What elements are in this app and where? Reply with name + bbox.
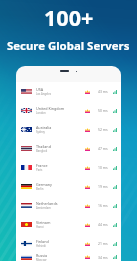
staticText: Paris: [36, 168, 43, 172]
staticText: Vietnam: [36, 220, 51, 225]
staticText: 100+: [44, 3, 94, 32]
staticText: Netherlands: [36, 201, 58, 206]
staticText: 52 ms: [98, 127, 108, 132]
staticText: 43 ms: [98, 89, 108, 94]
button[interactable]: United Kingdom: [16, 101, 121, 120]
button[interactable]: Finland: [16, 234, 121, 253]
button[interactable]: USA: [16, 82, 121, 101]
staticText: Russia: [36, 253, 48, 258]
staticText: 50 ms: [98, 108, 108, 113]
staticText: Germany: [36, 182, 52, 187]
staticText: United Kingdom: [36, 106, 65, 111]
staticText: Finland: [36, 239, 49, 244]
staticText: 19 ms: [98, 184, 108, 189]
staticText: 21 ms: [98, 241, 108, 246]
button[interactable]: Russia: [16, 253, 121, 261]
button[interactable]: Vietnam: [16, 215, 121, 234]
staticText: Thailand: [36, 144, 51, 149]
staticText: 44 ms: [98, 222, 108, 227]
staticText: Helsinki: [36, 244, 46, 248]
staticText: Secure Global Servers: [7, 38, 130, 54]
staticText: Australia: [36, 125, 52, 130]
staticText: 10 ms: [98, 165, 108, 170]
staticText: 34 ms: [98, 255, 108, 260]
staticText: Berlin: [36, 187, 44, 191]
staticText: USA: [36, 87, 44, 92]
button[interactable]: France: [16, 158, 121, 177]
button[interactable]: Netherlands: [16, 196, 121, 215]
staticText: Hanoi: [36, 225, 44, 229]
button[interactable]: Thailand: [16, 139, 121, 158]
button[interactable]: Australia: [16, 120, 121, 139]
staticText: Los Angeles: [36, 92, 52, 96]
staticText: Sydney: [36, 130, 45, 134]
staticText: 47 ms: [98, 146, 108, 151]
staticText: 16 ms: [98, 203, 108, 208]
staticText: Moscow: [36, 258, 47, 261]
staticText: London: [36, 111, 46, 115]
staticText: France: [36, 163, 48, 168]
button[interactable]: Germany: [16, 177, 121, 196]
staticText: Bangkok: [36, 149, 48, 153]
staticText: Amsterdam: [36, 206, 51, 210]
